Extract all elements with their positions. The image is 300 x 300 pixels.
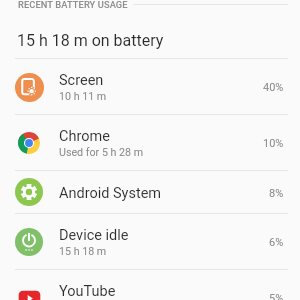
staticText: Used for 5 h 28 m <box>59 146 144 159</box>
staticText: 10 h 11 m <box>59 90 107 103</box>
button[interactable]: Device idle <box>0 214 300 269</box>
staticText: Chrome <box>59 128 110 145</box>
staticText: 10% <box>263 137 284 150</box>
staticText: Android System <box>59 185 162 202</box>
button[interactable]: Screen <box>0 59 300 114</box>
staticText: Device idle <box>59 227 129 244</box>
staticText: 15 h 18 m on battery <box>17 31 164 50</box>
button[interactable]: Chrome <box>0 115 300 170</box>
staticText: 8% <box>269 187 284 200</box>
staticText: 40% <box>263 81 284 94</box>
staticText: YouTube <box>59 283 116 300</box>
button[interactable]: YouTube <box>0 270 300 300</box>
staticText: RECENT BATTERY USAGE <box>18 0 128 9</box>
button[interactable]: Android System <box>0 171 300 213</box>
staticText: 6% <box>269 236 284 249</box>
staticText: 15 h 18 m <box>59 245 107 258</box>
staticText: Screen <box>59 72 104 89</box>
staticText: 5% <box>269 292 284 300</box>
